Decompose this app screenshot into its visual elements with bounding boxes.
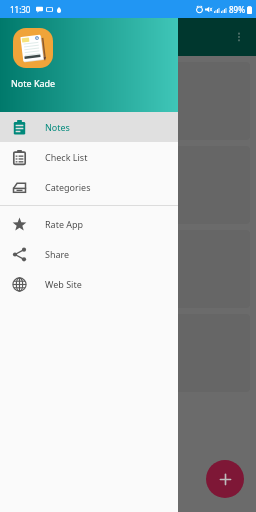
button[interactable]	[6, 146, 250, 224]
button[interactable]: Notes	[0, 112, 178, 142]
button[interactable]: Web Site	[0, 269, 178, 299]
button[interactable]: Add note	[206, 460, 244, 498]
staticText: 11:30	[10, 4, 31, 15]
button[interactable]	[6, 230, 250, 308]
button[interactable]: Rate App	[0, 209, 178, 239]
staticText: Categories	[45, 181, 91, 193]
button[interactable]: More options	[228, 26, 250, 48]
staticText: Share	[45, 248, 70, 260]
staticText: Check List	[45, 151, 88, 163]
button[interactable]	[6, 314, 250, 392]
staticText: 89%	[229, 4, 245, 15]
button[interactable]: Categories	[0, 172, 178, 202]
staticText: Note Kade	[11, 77, 56, 89]
button[interactable]: Check List	[0, 142, 178, 172]
staticText: Notes	[45, 121, 70, 133]
staticText: Rate App	[45, 218, 84, 230]
staticText: Web Site	[45, 278, 82, 290]
button[interactable]: Share	[0, 239, 178, 269]
button[interactable]	[6, 62, 250, 140]
